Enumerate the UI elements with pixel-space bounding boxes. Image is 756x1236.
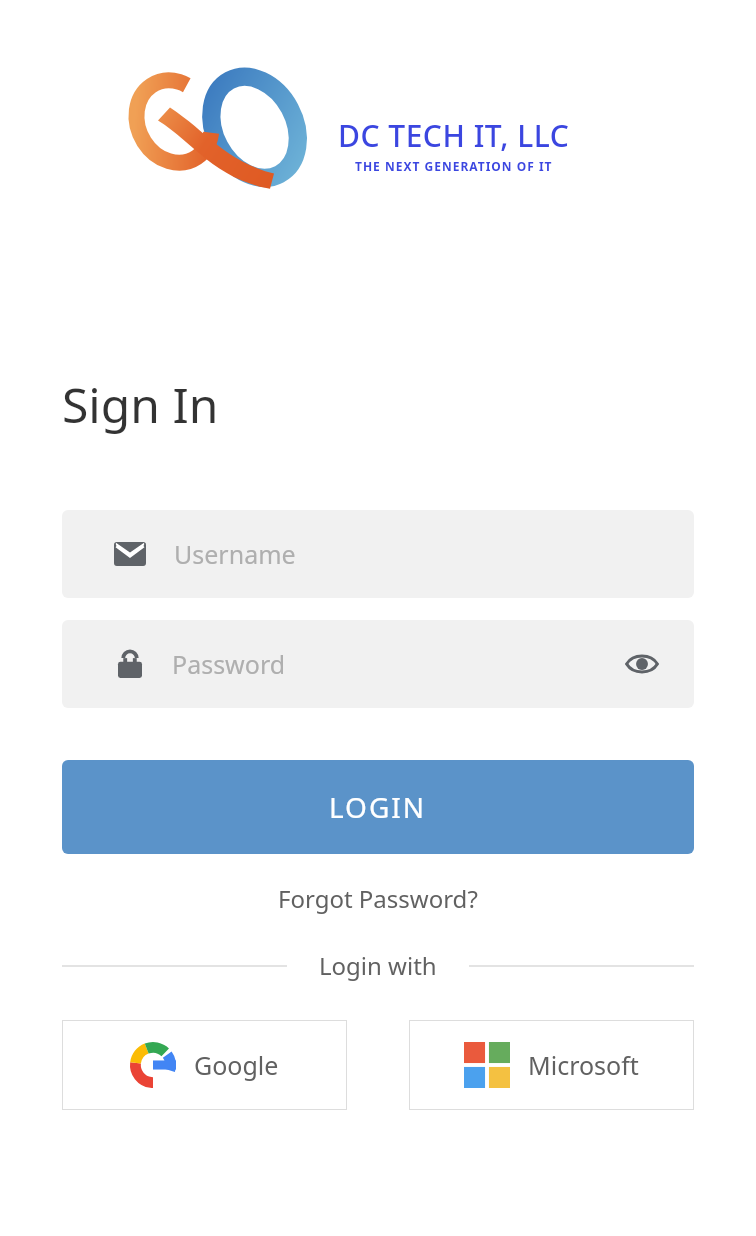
button[interactable]: Username [62,510,694,598]
button[interactable]: Google [62,1020,347,1110]
staticText: THE NEXT GENERATION OF IT [355,158,553,174]
staticText: Password [172,647,618,681]
button[interactable]: Password [62,620,694,708]
staticText: Forgot Password? [278,882,478,915]
button[interactable]: LOGIN [62,760,694,854]
staticText: Login with [319,949,437,982]
staticText: Username [174,537,296,571]
staticText: DC TECH IT, LLC [338,115,570,156]
staticText: LOGIN [329,788,427,826]
button[interactable]: Microsoft [409,1020,694,1110]
staticText: Sign In [62,372,219,437]
button[interactable]: Show password [618,640,666,688]
button[interactable]: Forgot Password? [266,876,490,921]
staticText: Microsoft [528,1048,639,1082]
staticText: Google [194,1048,279,1082]
